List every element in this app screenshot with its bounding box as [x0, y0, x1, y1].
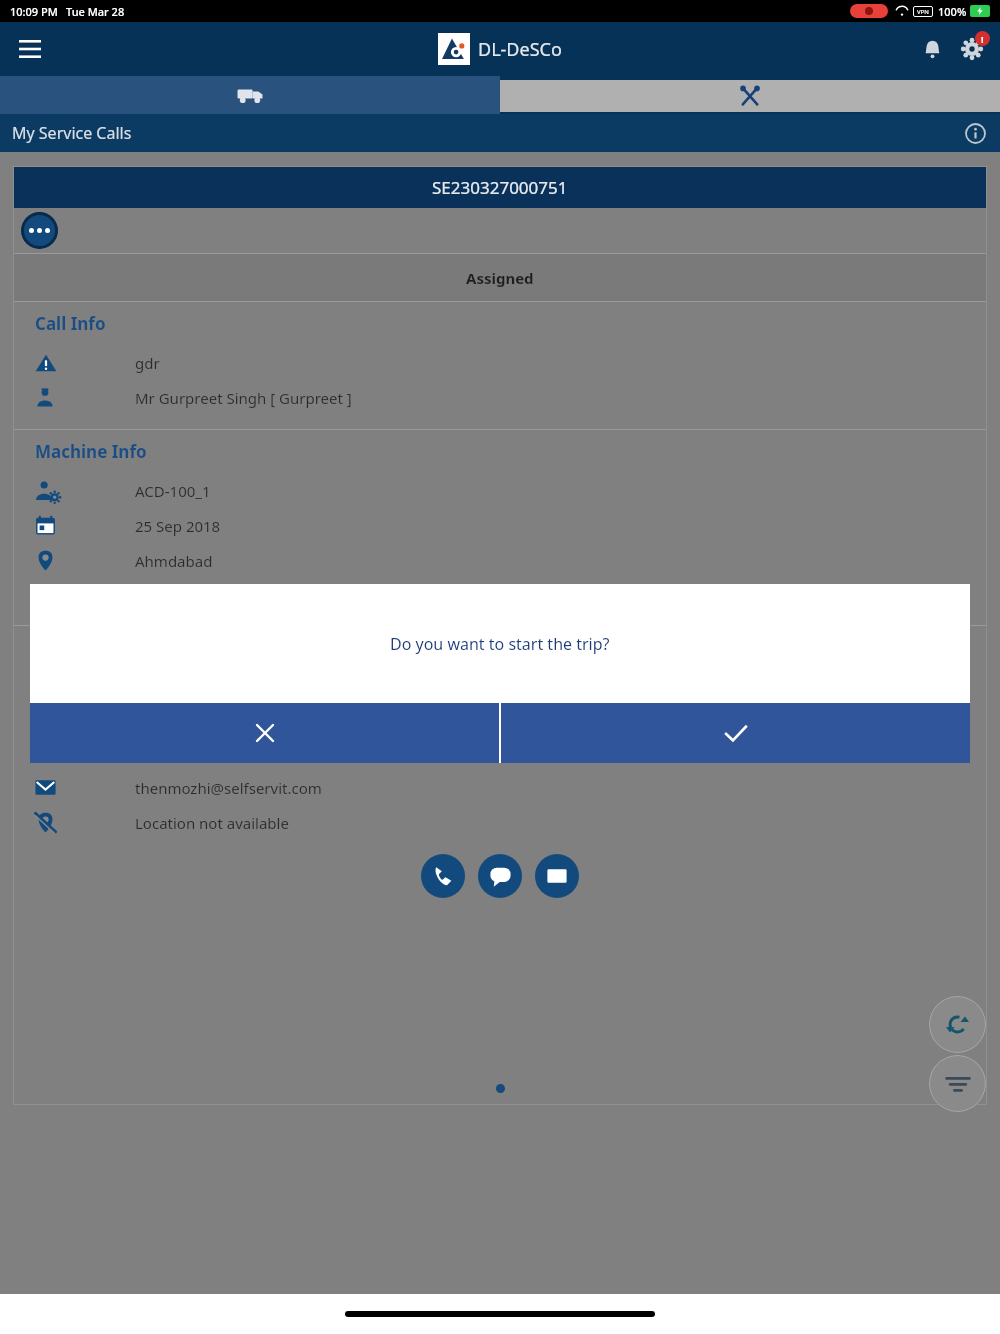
button[interactable]: Cancel	[30, 703, 499, 763]
staticText: ACD-100_1	[135, 481, 211, 501]
button[interactable]: Settings	[952, 29, 992, 69]
button[interactable]: Filter	[929, 1055, 986, 1112]
button[interactable]: Trips	[0, 76, 500, 114]
staticText: thenmozhi@selfservit.com	[135, 778, 322, 798]
staticText: SE230327000751	[432, 176, 568, 199]
button[interactable]: Message	[478, 854, 522, 898]
staticText: Do you want to start the trip?	[390, 633, 610, 655]
staticText: My Service Calls	[12, 122, 132, 144]
staticText: !	[981, 33, 984, 45]
button[interactable]: Notifications	[912, 29, 952, 69]
staticText: 10:09 PM	[10, 4, 58, 19]
staticText: VPN	[917, 8, 929, 16]
staticText: Call Info	[35, 312, 106, 335]
button[interactable]: Menu	[8, 27, 52, 71]
staticText: Ahmdabad	[135, 551, 213, 571]
staticText: Location not available	[135, 813, 289, 833]
button[interactable]: Information	[962, 120, 988, 146]
staticText: Assigned	[466, 268, 534, 288]
button[interactable]: More options	[21, 212, 58, 249]
staticText: Machine Info	[35, 440, 147, 463]
staticText: 25 Sep 2018	[135, 516, 221, 536]
staticText: Mr Gurpreet Singh [ Gurpreet ]	[135, 388, 352, 408]
staticText: 100%	[938, 4, 967, 19]
button[interactable]: Email	[535, 854, 579, 898]
button[interactable]: Refresh	[929, 996, 986, 1053]
staticText: gdr	[135, 353, 160, 373]
staticText: DL-DeSCo	[478, 37, 562, 62]
button[interactable]: Call	[421, 854, 465, 898]
button[interactable]: Service	[500, 80, 1000, 112]
button[interactable]: Confirm	[501, 703, 970, 763]
staticText: Tue Mar 28	[66, 4, 125, 19]
